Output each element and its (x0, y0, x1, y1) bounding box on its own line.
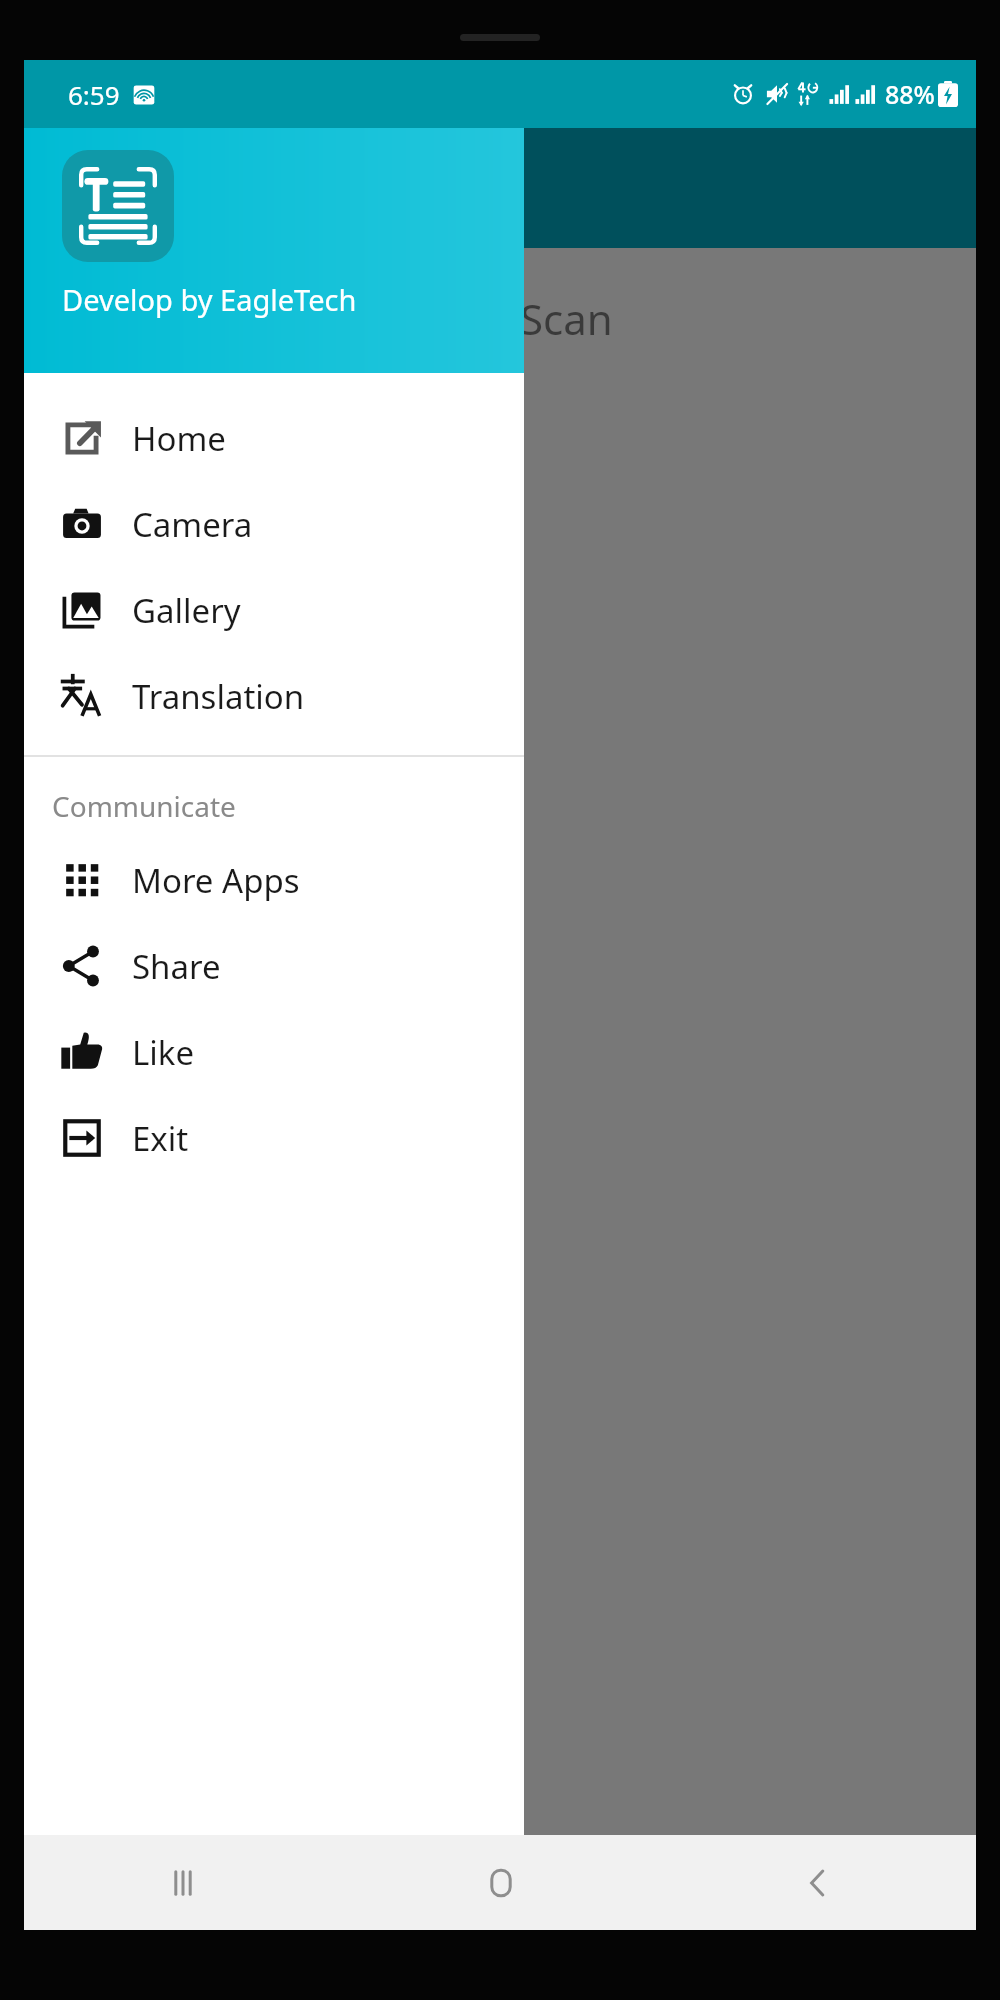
button[interactable]: Recents (24, 1835, 342, 1930)
staticText: Tap to Scan (388, 290, 613, 347)
button[interactable]: Share (24, 923, 524, 1009)
button[interactable]: Translation (24, 653, 524, 739)
staticText: Communicate (52, 787, 236, 825)
staticText: More Apps (132, 858, 300, 903)
staticText: Develop by EagleTech (62, 280, 357, 319)
button[interactable]: Home (24, 395, 524, 481)
button[interactable]: Home (342, 1835, 659, 1930)
staticText: Like (132, 1030, 195, 1075)
button[interactable]: Back (659, 1835, 976, 1930)
staticText: Gallery (132, 588, 241, 633)
staticText: Home (132, 416, 226, 461)
staticText: Camera (132, 502, 253, 547)
button[interactable]: More Apps (24, 837, 524, 923)
button[interactable]: Exit (24, 1095, 524, 1181)
button[interactable]: Gallery (24, 567, 524, 653)
staticText: Translation (132, 674, 305, 719)
staticText: 6:59 (68, 77, 120, 112)
staticText: Share (132, 944, 221, 989)
staticText: 88% (885, 77, 935, 111)
button[interactable]: Like (24, 1009, 524, 1095)
button[interactable]: Camera (24, 481, 524, 567)
staticText: Exit (132, 1116, 189, 1161)
